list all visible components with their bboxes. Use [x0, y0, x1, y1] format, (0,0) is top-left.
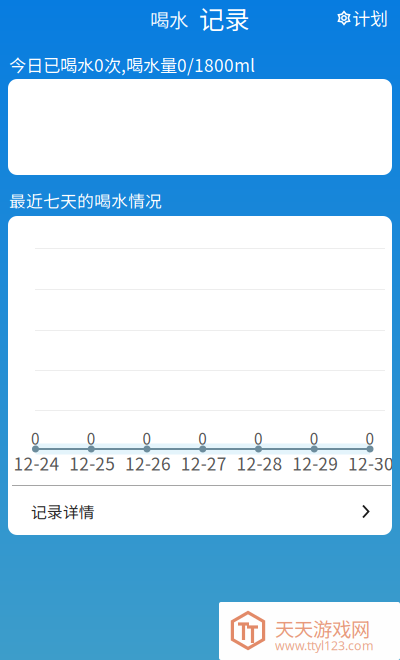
staticText: 12-28: [236, 450, 282, 476]
staticText: 0: [31, 427, 40, 449]
staticText: 0: [254, 427, 263, 449]
staticText: 0: [310, 427, 319, 449]
staticText: 12-27: [181, 450, 227, 476]
button[interactable]: 记录: [196, 4, 252, 32]
button[interactable]: 喝水: [147, 6, 191, 32]
staticText: 今日已喝水0次,喝水量0/1800ml: [9, 52, 255, 77]
staticText: 12-24: [13, 450, 59, 476]
staticText: 12-25: [69, 450, 115, 476]
staticText: 12-29: [292, 450, 338, 476]
staticText: 12-30: [348, 450, 394, 476]
staticText: 0: [87, 427, 96, 449]
staticText: 0: [365, 427, 374, 449]
staticText: 喝水: [150, 5, 188, 33]
staticText: www.ttyl123.com: [275, 637, 374, 654]
staticText: 记录: [199, 0, 249, 36]
staticText: 12-26: [125, 450, 171, 476]
staticText: 0: [198, 427, 207, 449]
staticText: 0: [142, 427, 151, 449]
button[interactable]: 计划: [337, 6, 388, 30]
staticText: 天天游戏网: [275, 614, 370, 642]
button[interactable]: 记录详情: [8, 487, 392, 536]
staticText: 计划: [352, 5, 388, 31]
staticText: 记录详情: [31, 500, 95, 523]
staticText: 最近七天的喝水情况: [9, 188, 162, 212]
